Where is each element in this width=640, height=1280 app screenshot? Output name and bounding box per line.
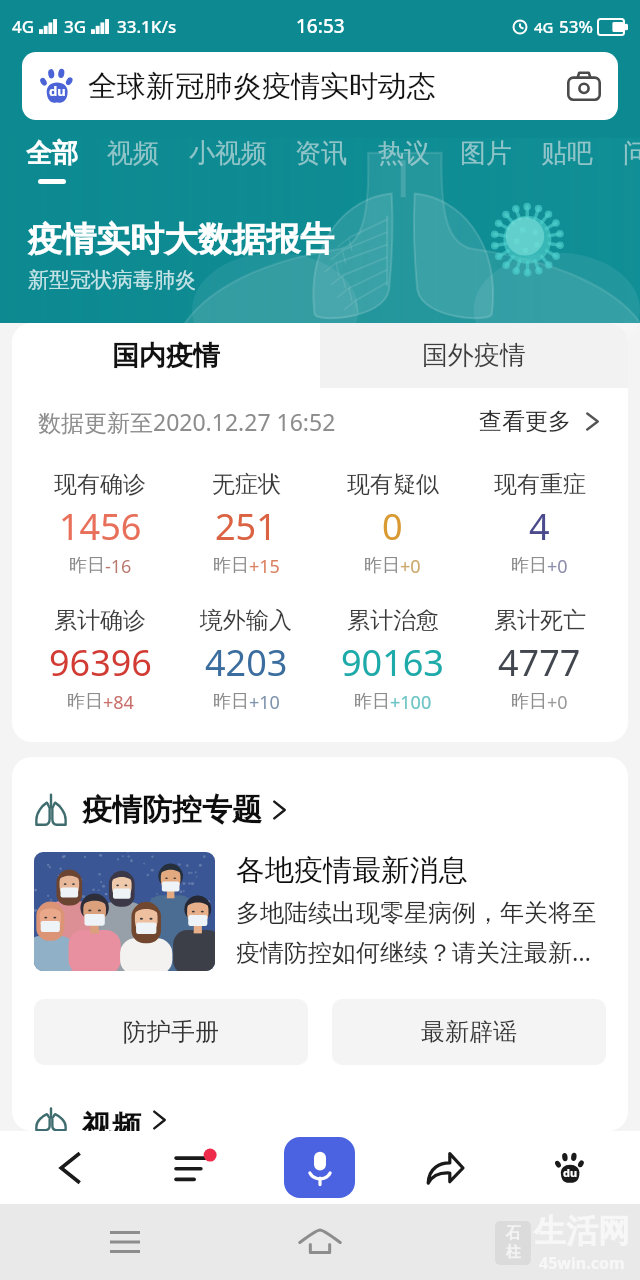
staticText: 45win.com (539, 1252, 625, 1274)
button[interactable]: Voice search (257, 1131, 382, 1204)
button[interactable]: 热议 (374, 137, 434, 184)
staticText: 昨日 (354, 690, 390, 713)
button[interactable]: 最新辟谣 (332, 999, 606, 1065)
staticText: du (49, 82, 66, 100)
staticText: 累计死亡 (494, 606, 586, 635)
staticText: 小视频 (189, 137, 267, 170)
staticText: 昨日 (67, 690, 103, 713)
button[interactable]: 累计死亡 (466, 606, 613, 715)
staticText: 疫情防控如何继续？请关注最新… (236, 935, 591, 968)
staticText: 昨日 (511, 690, 547, 713)
staticText: +0 (547, 554, 568, 579)
button[interactable]: Menu (132, 1131, 257, 1204)
staticText: 0 (382, 502, 403, 551)
staticText: 国内疫情 (112, 339, 220, 373)
staticText: 柱 (506, 1243, 521, 1262)
staticText: 现有确诊 (54, 470, 146, 499)
button[interactable]: 图片 (456, 137, 516, 184)
staticText: 多地陆续出现零星病例，年关将至 (236, 898, 596, 928)
staticText: +84 (103, 690, 134, 715)
staticText: 全部 (26, 137, 78, 170)
staticText: 疫情实时大数据报告 (28, 218, 334, 261)
staticText: 贴吧 (541, 137, 593, 170)
staticText: 累计治愈 (347, 606, 439, 635)
button[interactable]: 境外输入 (173, 606, 319, 715)
staticText: 1456 (59, 502, 142, 551)
button[interactable]: 防护手册 (34, 999, 308, 1065)
staticText: 疫情防控专题 (82, 791, 262, 829)
button[interactable]: Back (8, 1131, 132, 1204)
button[interactable]: Home (290, 1204, 350, 1280)
button[interactable]: 无症状 (173, 470, 319, 579)
staticText: 昨日 (69, 554, 105, 577)
staticText: 3G (64, 15, 87, 38)
button[interactable]: Recents (95, 1204, 155, 1280)
staticText: 问 (623, 137, 640, 170)
button[interactable]: Camera search (556, 58, 612, 114)
staticText: 昨日 (511, 554, 547, 577)
staticText: 53% (559, 15, 593, 38)
button[interactable]: 贴吧 (537, 137, 597, 184)
button[interactable]: 问 (619, 137, 640, 184)
button[interactable]: 现有确诊 (27, 470, 173, 579)
button[interactable]: 累计治愈 (319, 606, 466, 715)
staticText: 昨日 (364, 554, 400, 577)
button[interactable]: 国内疫情 (12, 323, 320, 388)
staticText: 新型冠状病毒肺炎 (28, 267, 196, 293)
staticText: +100 (390, 690, 432, 715)
staticText: -16 (105, 554, 132, 579)
staticText: 33.1K/s (117, 15, 177, 38)
staticText: 4 (529, 502, 550, 551)
button[interactable]: 各地疫情最新消息 (34, 852, 596, 971)
staticText: 最新辟谣 (421, 1017, 517, 1047)
staticText: 昨日 (213, 690, 249, 713)
staticText: 累计确诊 (54, 606, 146, 635)
button[interactable]: 疫情防控专题 (34, 791, 287, 829)
staticText: 4G (12, 15, 35, 38)
staticText: +15 (249, 554, 280, 579)
button[interactable]: 现有疑似 (319, 470, 466, 579)
button[interactable]: 资讯 (291, 137, 351, 184)
staticText: +0 (547, 690, 568, 715)
button[interactable]: 国外疫情 (320, 323, 628, 388)
button[interactable]: 数据更新至2020.12.27 16:52 (38, 388, 600, 454)
staticText: 资讯 (295, 137, 347, 170)
staticText: 生活网 (534, 1211, 630, 1251)
button[interactable]: 全部 (22, 137, 82, 184)
staticText: 视频 (107, 137, 159, 170)
staticText: 查看更多 (479, 407, 571, 436)
staticText: 90163 (341, 638, 444, 687)
staticText: 4203 (205, 638, 288, 687)
staticText: 图片 (460, 137, 512, 170)
staticText: 无症状 (212, 470, 281, 499)
button[interactable]: 视频 (34, 1108, 167, 1131)
staticText: 16:53 (296, 13, 345, 39)
staticText: 国外疫情 (422, 339, 526, 372)
staticText: 境外输入 (200, 606, 292, 635)
staticText: 数据更新至2020.12.27 16:52 (38, 406, 336, 437)
button[interactable]: Baidu home (507, 1131, 632, 1204)
staticText: 视频 (82, 1108, 142, 1131)
staticText: 石 (506, 1224, 521, 1243)
button[interactable]: 小视频 (186, 137, 270, 184)
staticText: 96396 (49, 638, 152, 687)
staticText: 昨日 (213, 554, 249, 577)
staticText: 4777 (498, 638, 581, 687)
staticText: 各地疫情最新消息 (236, 852, 468, 889)
button[interactable]: 累计确诊 (27, 606, 173, 715)
staticText: du (563, 1165, 578, 1180)
staticText: 防护手册 (123, 1017, 219, 1047)
staticText: 全球新冠肺炎疫情实时动态 (88, 68, 436, 105)
staticText: 现有疑似 (347, 470, 439, 499)
staticText: +0 (400, 554, 421, 579)
button[interactable]: du (22, 52, 618, 120)
staticText: +10 (249, 690, 280, 715)
staticText: 现有重症 (494, 470, 586, 499)
staticText: 251 (215, 502, 277, 551)
staticText: 4G (534, 17, 554, 37)
button[interactable]: 现有重症 (466, 470, 613, 579)
button[interactable]: 视频 (103, 137, 163, 184)
button[interactable]: Share (382, 1131, 507, 1204)
staticText: 热议 (378, 137, 430, 170)
